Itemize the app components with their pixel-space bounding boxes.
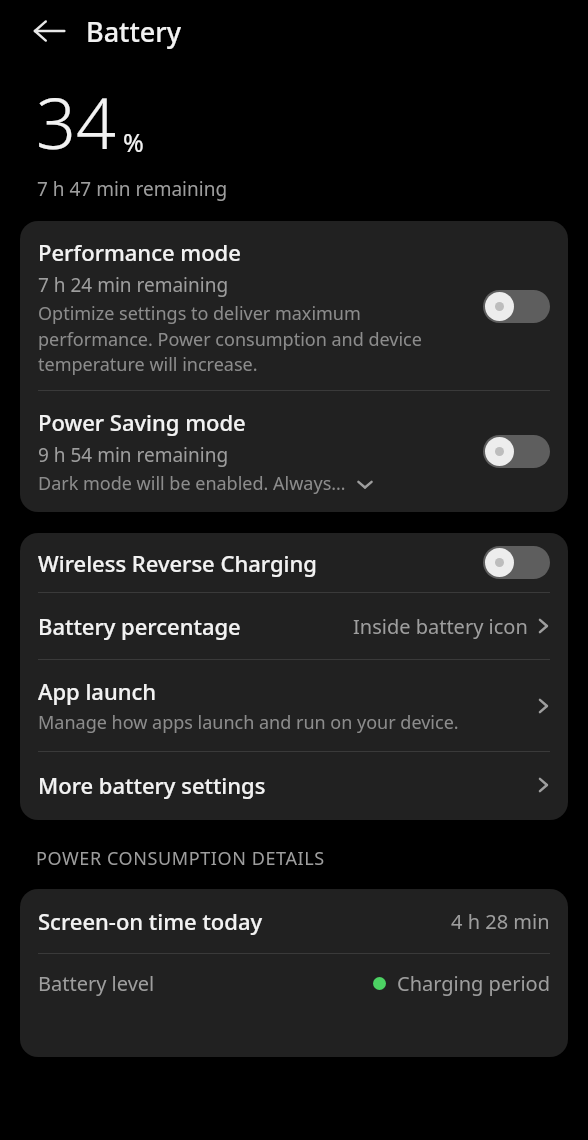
staticText: Wireless Reverse Charging bbox=[38, 548, 473, 578]
staticText: Manage how apps launch and run on your d… bbox=[38, 710, 459, 735]
staticText: 7 h 47 min remaining bbox=[37, 176, 228, 202]
staticText: POWER CONSUMPTION DETAILS bbox=[36, 846, 325, 871]
staticText: Optimize settings to deliver maximum per… bbox=[38, 301, 471, 376]
button[interactable]: Performance mode bbox=[20, 221, 568, 390]
staticText: Inside battery icon bbox=[353, 613, 528, 640]
button[interactable]: Power Saving mode bbox=[20, 391, 568, 512]
staticText: Battery bbox=[86, 13, 181, 50]
staticText: More battery settings bbox=[38, 770, 532, 800]
staticText: 9 h 54 min remaining bbox=[38, 442, 229, 468]
button[interactable]: Battery percentage bbox=[20, 593, 568, 659]
staticText: Charging period bbox=[397, 970, 550, 997]
button[interactable]: Back bbox=[26, 8, 72, 54]
staticText: % bbox=[123, 125, 144, 159]
staticText: 4 h 28 min bbox=[451, 908, 550, 935]
staticText: Performance mode bbox=[38, 237, 241, 267]
staticText: App launch bbox=[38, 676, 157, 706]
staticText: Dark mode will be enabled. Always… bbox=[38, 471, 346, 496]
staticText: 7 h 24 min remaining bbox=[38, 272, 229, 298]
button[interactable]: More battery settings bbox=[20, 752, 568, 820]
button[interactable]: Wireless Reverse Charging toggle bbox=[483, 546, 550, 579]
staticText: Battery level bbox=[38, 970, 373, 997]
staticText: 34 bbox=[36, 74, 116, 169]
button[interactable]: Wireless Reverse Charging bbox=[20, 533, 568, 592]
button[interactable]: App launch bbox=[20, 660, 568, 751]
staticText: Screen-on time today bbox=[38, 906, 451, 936]
button[interactable]: Screen-on time today bbox=[20, 889, 568, 953]
button[interactable]: Power Saving mode toggle bbox=[483, 435, 550, 468]
staticText: Power Saving mode bbox=[38, 407, 246, 437]
button[interactable]: Performance mode toggle bbox=[483, 290, 550, 323]
staticText: Battery percentage bbox=[38, 611, 353, 641]
